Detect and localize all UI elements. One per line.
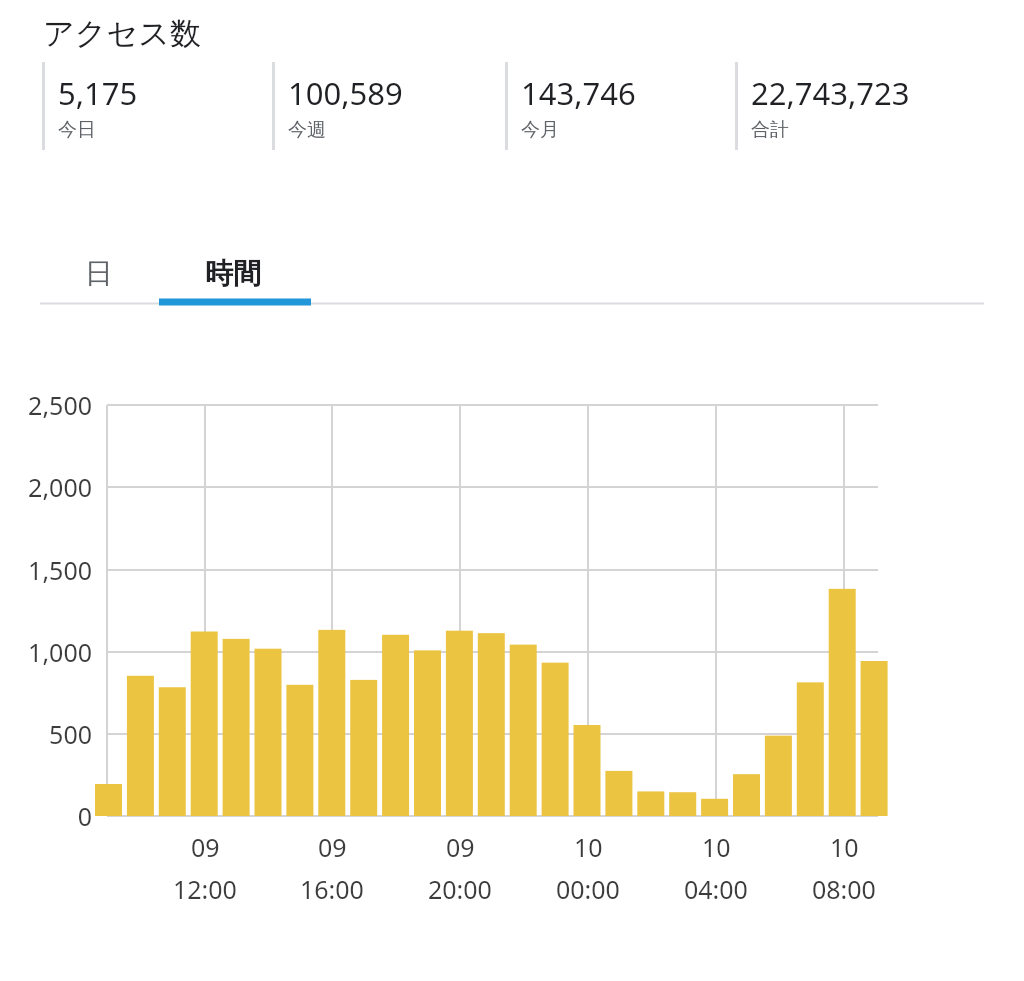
staticText: 09 <box>446 830 475 864</box>
button[interactable]: 143,746 <box>505 62 735 172</box>
staticText: 時間 <box>205 256 261 291</box>
staticText: アクセス数 <box>43 14 201 53</box>
staticText: 10 <box>702 830 731 864</box>
staticText: 合計 <box>751 118 789 142</box>
staticText: 今日 <box>58 118 96 142</box>
staticText: 143,746 <box>521 72 636 114</box>
staticText: 5,175 <box>58 72 138 114</box>
staticText: 今週 <box>288 118 326 142</box>
staticText: 09 <box>318 830 347 864</box>
button[interactable]: 時間 <box>157 258 309 322</box>
staticText: 0 <box>77 799 92 833</box>
staticText: 今月 <box>521 118 559 142</box>
staticText: 20:00 <box>428 872 492 906</box>
staticText: 00:00 <box>556 872 620 906</box>
staticText: 04:00 <box>684 872 748 906</box>
staticText: 12:00 <box>173 872 237 906</box>
staticText: 10 <box>830 830 859 864</box>
staticText: 2,500 <box>28 388 92 422</box>
staticText: 10 <box>574 830 603 864</box>
staticText: 日 <box>85 256 113 291</box>
staticText: 1,000 <box>28 635 92 669</box>
staticText: 16:00 <box>300 872 364 906</box>
button[interactable]: 5,175 <box>42 62 272 172</box>
button[interactable]: 日 <box>40 258 157 322</box>
button[interactable]: 22,743,723 <box>735 62 965 172</box>
staticText: 2,000 <box>28 470 92 504</box>
staticText: 09 <box>191 830 220 864</box>
staticText: 08:00 <box>812 872 876 906</box>
button[interactable]: 100,589 <box>272 62 505 172</box>
staticText: 100,589 <box>288 72 403 114</box>
staticText: 22,743,723 <box>751 72 910 114</box>
staticText: 1,500 <box>28 553 92 587</box>
staticText: 500 <box>49 717 92 751</box>
